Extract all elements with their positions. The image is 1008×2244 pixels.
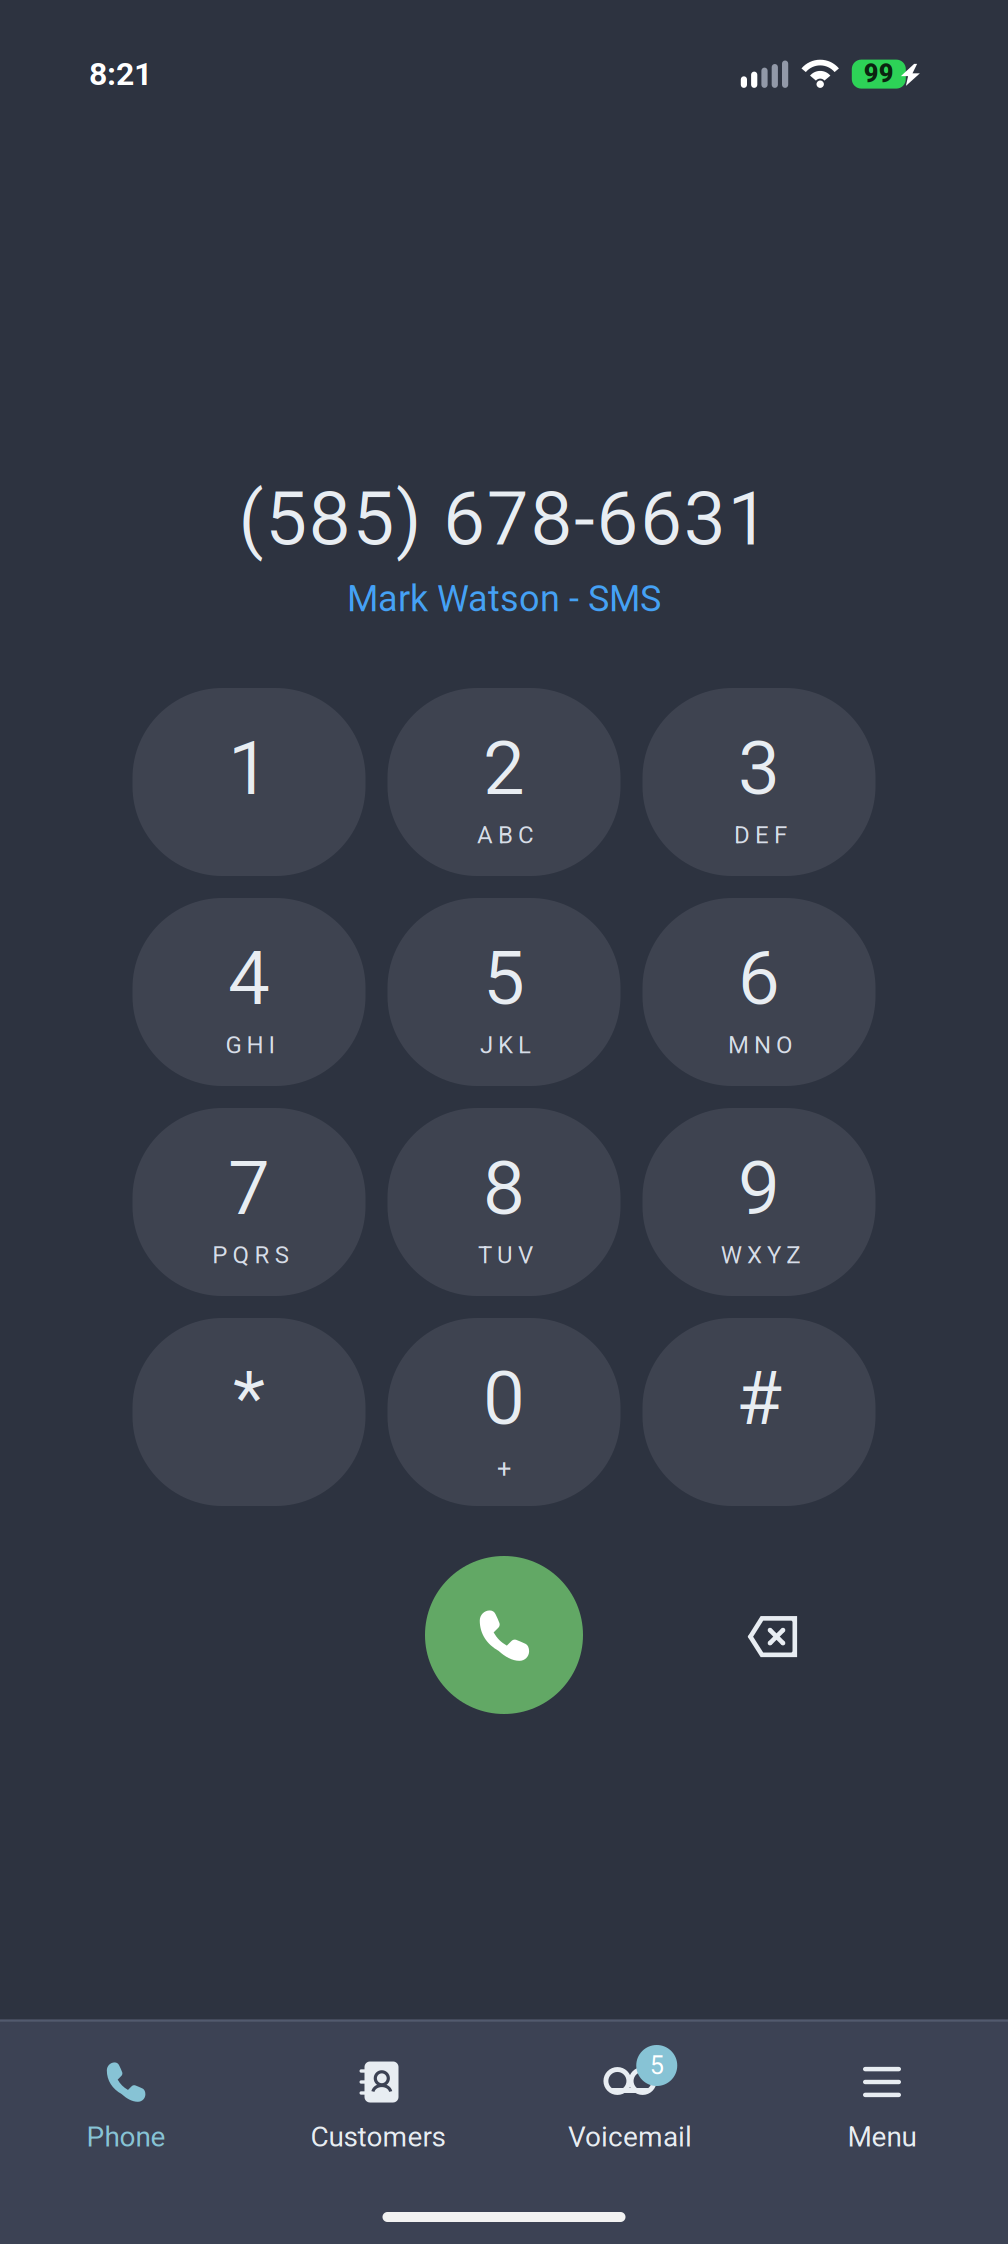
- button[interactable]: #: [642, 1318, 875, 1506]
- button[interactable]: 3: [642, 688, 875, 876]
- button[interactable]: 7: [132, 1108, 365, 1296]
- staticText: GHI: [225, 1031, 276, 1059]
- button[interactable]: Delete: [717, 1581, 827, 1691]
- staticText: 7: [228, 1145, 270, 1232]
- button[interactable]: 4: [132, 898, 365, 1086]
- button[interactable]: 2: [387, 688, 620, 876]
- staticText: 6: [738, 935, 780, 1022]
- button[interactable]: 0: [387, 1318, 620, 1506]
- staticText: Phone: [86, 2121, 165, 2153]
- button[interactable]: 5: [504, 2022, 756, 2244]
- button[interactable]: Mark Watson - SMS: [304, 576, 704, 622]
- staticText: 8: [483, 1145, 525, 1232]
- staticText: 99: [864, 59, 894, 88]
- staticText: 3: [738, 725, 780, 812]
- button[interactable]: *: [132, 1318, 365, 1506]
- staticText: DEF: [734, 821, 787, 849]
- staticText: WXYZ: [721, 1241, 800, 1269]
- button[interactable]: Phone: [0, 2022, 252, 2244]
- staticText: 8:21: [89, 55, 152, 93]
- button[interactable]: 5: [387, 898, 620, 1086]
- button[interactable]: 8: [387, 1108, 620, 1296]
- staticText: TUV: [478, 1241, 533, 1269]
- staticText: Voicemail: [568, 2121, 692, 2153]
- staticText: MNO: [728, 1031, 793, 1059]
- button[interactable]: 9: [642, 1108, 875, 1296]
- staticText: 2: [483, 725, 525, 812]
- staticText: 1: [228, 725, 270, 812]
- staticText: +: [497, 1454, 511, 1484]
- staticText: 5: [650, 2051, 664, 2080]
- staticText: 0: [483, 1355, 525, 1442]
- button[interactable]: 1: [132, 688, 365, 876]
- staticText: Mark Watson - SMS: [347, 578, 661, 620]
- button[interactable]: Menu: [756, 2022, 1008, 2244]
- staticText: *: [233, 1355, 265, 1442]
- button[interactable]: Customers: [252, 2022, 504, 2244]
- staticText: 4: [228, 935, 270, 1022]
- button[interactable]: 6: [642, 898, 875, 1086]
- staticText: (585) 678-6631: [239, 475, 769, 563]
- staticText: #: [736, 1355, 781, 1442]
- staticText: 9: [738, 1145, 780, 1232]
- staticText: Menu: [847, 2121, 916, 2153]
- staticText: JKL: [480, 1031, 531, 1059]
- staticText: ABC: [477, 821, 534, 849]
- button[interactable]: Call: [425, 1556, 583, 1714]
- staticText: 5: [483, 935, 525, 1022]
- staticText: Customers: [310, 2121, 445, 2153]
- staticText: PQRS: [212, 1241, 289, 1269]
